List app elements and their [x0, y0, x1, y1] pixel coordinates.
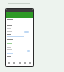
button[interactable]: Tab: [18, 61, 22, 65]
button[interactable]: Tab: [12, 61, 16, 65]
button[interactable]: Tab: [23, 61, 27, 65]
button[interactable]: Tab: [7, 61, 11, 65]
button[interactable]: Tab: [28, 61, 32, 65]
